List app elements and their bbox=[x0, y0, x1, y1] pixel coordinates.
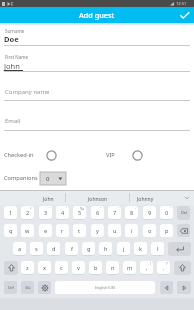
button[interactable]: k bbox=[134, 242, 147, 255]
staticText: 9 bbox=[148, 209, 152, 217]
button[interactable]: e bbox=[39, 224, 52, 237]
button[interactable]: 6 bbox=[91, 206, 104, 219]
staticText: x bbox=[43, 264, 46, 272]
button[interactable] bbox=[46, 150, 57, 161]
button[interactable]: y bbox=[91, 224, 104, 237]
button[interactable]: a bbox=[13, 242, 26, 255]
staticText: ! bbox=[150, 261, 151, 266]
staticText: Email bbox=[5, 117, 21, 125]
button[interactable]: p bbox=[160, 224, 173, 237]
button[interactable]: 2 bbox=[21, 206, 34, 219]
button[interactable]: 7 bbox=[108, 206, 121, 219]
button[interactable]: Del bbox=[177, 206, 190, 219]
button[interactable]: d bbox=[47, 242, 60, 255]
staticText: 4 bbox=[61, 209, 65, 217]
staticText: !#☺ bbox=[25, 286, 31, 290]
button[interactable] bbox=[174, 261, 191, 274]
button[interactable]: t bbox=[73, 224, 86, 237]
staticText: z bbox=[26, 264, 29, 272]
button[interactable]: f bbox=[65, 242, 78, 255]
button[interactable]: !#☺ bbox=[21, 281, 34, 294]
staticText: h bbox=[104, 245, 108, 253]
staticText: a bbox=[18, 245, 22, 253]
button[interactable]: n bbox=[106, 261, 119, 274]
staticText: ' bbox=[49, 206, 50, 211]
staticText: Checked-in bbox=[4, 151, 34, 159]
staticText: 3 bbox=[44, 209, 48, 217]
staticText: 8 bbox=[130, 209, 134, 217]
button[interactable] bbox=[177, 281, 191, 294]
staticText: o bbox=[148, 227, 152, 235]
button[interactable]: Johnson bbox=[88, 196, 108, 203]
staticText: v bbox=[77, 264, 80, 272]
button[interactable]: o bbox=[143, 224, 156, 237]
button[interactable] bbox=[180, 12, 190, 19]
staticText: ? bbox=[166, 261, 168, 266]
button[interactable] bbox=[0, 7, 194, 23]
staticText: c bbox=[60, 264, 63, 272]
button[interactable]: g bbox=[82, 242, 95, 255]
button[interactable]: j bbox=[117, 242, 130, 255]
button[interactable] bbox=[38, 281, 51, 294]
button[interactable] bbox=[168, 242, 191, 255]
button[interactable]: 0 bbox=[160, 206, 173, 219]
button[interactable]: , bbox=[140, 261, 153, 274]
staticText: 12:51 bbox=[176, 1, 187, 6]
staticText: j bbox=[123, 245, 125, 253]
button[interactable]: u bbox=[108, 224, 121, 237]
staticText: Ctrl bbox=[8, 285, 14, 290]
button[interactable]: i bbox=[125, 224, 138, 237]
staticText: d bbox=[52, 245, 56, 253]
button[interactable]: John bbox=[43, 196, 54, 203]
staticText: ° bbox=[30, 206, 32, 211]
staticText: ' bbox=[170, 206, 171, 211]
staticText: Companions bbox=[4, 174, 38, 182]
staticText: r bbox=[61, 227, 64, 235]
staticText: q bbox=[9, 227, 13, 235]
staticText: 6 bbox=[96, 209, 100, 217]
button[interactable]: x bbox=[38, 261, 51, 274]
button[interactable]: . bbox=[157, 261, 170, 274]
button[interactable]: Johnny bbox=[137, 196, 154, 203]
staticText: u bbox=[113, 227, 117, 235]
staticText: VIP bbox=[106, 151, 115, 159]
button[interactable] bbox=[160, 281, 173, 294]
staticText: John bbox=[4, 61, 20, 71]
button[interactable] bbox=[4, 261, 18, 274]
staticText: Del bbox=[181, 210, 187, 215]
staticText: 0 bbox=[46, 175, 50, 183]
staticText: , bbox=[146, 264, 148, 272]
button[interactable]: Ctrl bbox=[4, 281, 17, 294]
button[interactable]: English (UK) bbox=[55, 281, 155, 294]
button[interactable]: 4 bbox=[56, 206, 69, 219]
button[interactable]: s bbox=[30, 242, 43, 255]
button[interactable]: 0 bbox=[40, 172, 66, 185]
button[interactable]: z bbox=[21, 261, 34, 274]
button[interactable]: v bbox=[72, 261, 85, 274]
staticText: s bbox=[35, 245, 38, 253]
staticText: l bbox=[157, 245, 159, 253]
button[interactable]: c bbox=[55, 261, 68, 274]
staticText: ' bbox=[118, 206, 119, 211]
staticText: ' bbox=[66, 206, 67, 211]
button[interactable] bbox=[132, 150, 143, 161]
button[interactable]: b bbox=[89, 261, 102, 274]
button[interactable]: m bbox=[123, 261, 136, 274]
button[interactable]: h bbox=[99, 242, 112, 255]
button[interactable]: l bbox=[151, 242, 164, 255]
button[interactable] bbox=[177, 224, 190, 237]
button[interactable]: 5 bbox=[73, 206, 86, 219]
staticText: English (UK) bbox=[95, 285, 116, 290]
button[interactable]: 3 bbox=[39, 206, 52, 219]
staticText: Surname bbox=[5, 28, 25, 34]
staticText: y bbox=[96, 227, 99, 235]
button[interactable]: w bbox=[21, 224, 34, 237]
button[interactable]: 8 bbox=[125, 206, 138, 219]
staticText: 2 bbox=[26, 209, 30, 217]
staticText: Doe bbox=[4, 34, 19, 44]
button[interactable]: r bbox=[56, 224, 69, 237]
button[interactable]: 1 bbox=[4, 206, 17, 219]
staticText: f bbox=[71, 245, 73, 253]
button[interactable]: 9 bbox=[143, 206, 156, 219]
button[interactable]: q bbox=[4, 224, 17, 237]
